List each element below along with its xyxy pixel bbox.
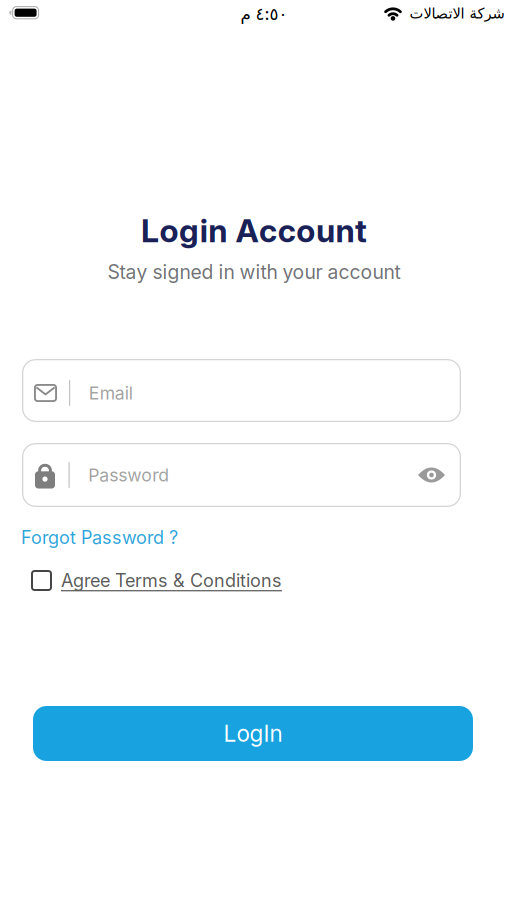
staticText: Email — [89, 382, 133, 404]
staticText: Login Account — [141, 211, 367, 250]
button[interactable]: Show password — [418, 466, 445, 483]
staticText: Agree Terms & Conditions — [61, 570, 282, 591]
button[interactable]: Password — [22, 443, 461, 507]
button[interactable]: Forgot Password ? — [21, 527, 178, 548]
staticText: Forgot Password ? — [21, 527, 178, 548]
staticText: Password — [88, 464, 169, 486]
staticText: ٤:٥٠ م — [240, 4, 287, 24]
staticText: شركة الاتصالات — [409, 5, 504, 22]
staticText: LogIn — [223, 720, 282, 747]
button[interactable]: LogIn — [33, 706, 473, 761]
button[interactable]: Email — [22, 359, 461, 422]
button[interactable]: Agree Terms & Conditions — [31, 570, 282, 591]
staticText: Stay signed in with your account — [107, 260, 400, 284]
